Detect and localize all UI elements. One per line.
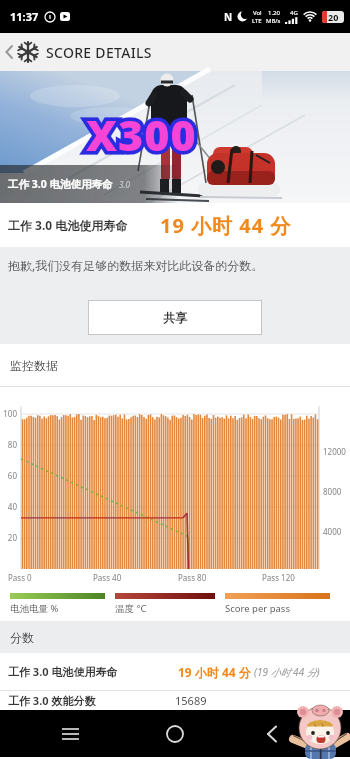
staticText: Pass 120 <box>262 572 295 583</box>
staticText: 60 <box>0 470 17 481</box>
staticText: 1.20 <box>268 9 280 17</box>
staticText: 19 小时 44 分 <box>178 664 251 680</box>
button[interactable] <box>46 710 94 757</box>
staticText: 工作 3.0 效能分数 <box>8 693 96 708</box>
staticText: 80 <box>0 439 17 450</box>
staticText: Pass 40 <box>93 572 122 583</box>
staticText: 工作 3.0 电池使用寿命 <box>8 217 128 233</box>
staticText: 温度 °C <box>115 602 147 615</box>
staticText: LTE <box>252 17 262 25</box>
staticText: 工作 3.0 电池使用寿命 <box>8 664 118 679</box>
staticText: 40 <box>0 501 17 512</box>
staticText: 15689 <box>175 693 207 708</box>
staticText: 20 <box>0 532 17 543</box>
staticText: 100 <box>0 408 17 419</box>
staticText: Pass 80 <box>178 572 207 583</box>
staticText: 12000 <box>323 446 346 457</box>
staticText: X300 <box>86 105 197 164</box>
staticText: Pass 0 <box>8 572 32 583</box>
staticText: SCORE DETAILS <box>46 43 152 62</box>
staticText: 19 小时 44 分 <box>160 212 292 239</box>
staticText: 11:37 <box>10 9 39 24</box>
staticText: N <box>224 10 233 24</box>
staticText: X300 <box>86 105 197 164</box>
button[interactable] <box>151 710 199 757</box>
staticText: 4G <box>290 9 298 17</box>
staticText: 分数 <box>10 630 34 645</box>
staticText: 8000 <box>323 486 342 497</box>
button[interactable] <box>3 33 15 71</box>
staticText: Score per pass <box>225 602 290 615</box>
staticText: 3.0 <box>119 179 130 190</box>
staticText: 20 <box>328 11 339 23</box>
button[interactable]: 共享 <box>88 300 262 335</box>
staticText: 工作 3.0 电池使用寿命 <box>8 177 113 191</box>
staticText: 共享 <box>163 310 187 325</box>
staticText: 抱歉,我们没有足够的数据来对比此设备的分数。 <box>8 257 264 273</box>
staticText: Vol <box>253 9 262 17</box>
staticText: MB/s <box>266 17 281 25</box>
staticText: 电池电量 % <box>10 602 59 615</box>
staticText: (19 小时 44 分) <box>254 665 320 679</box>
button[interactable] <box>248 710 296 757</box>
staticText: 4000 <box>323 526 342 537</box>
staticText: 监控数据 <box>10 358 58 373</box>
